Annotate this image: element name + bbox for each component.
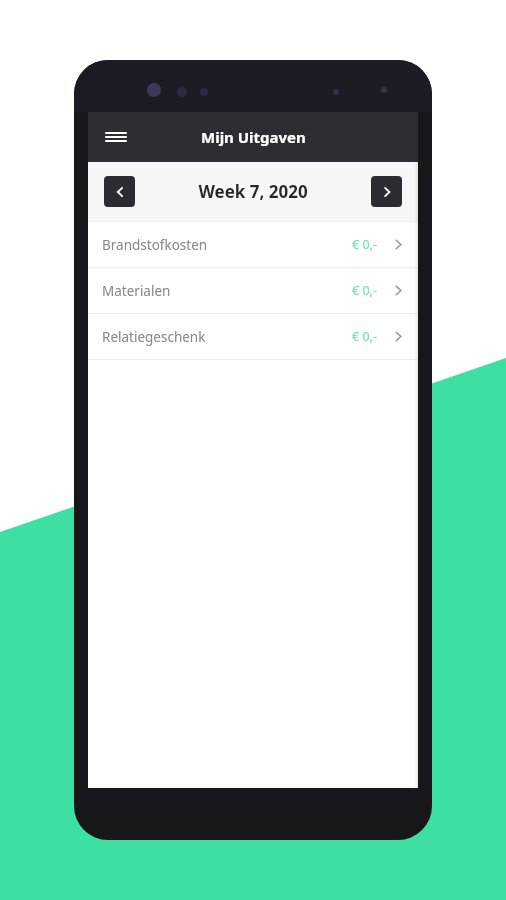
button[interactable]: Materialen xyxy=(88,268,418,313)
button[interactable]: Menu xyxy=(98,119,134,155)
staticText: Brandstofkosten xyxy=(102,236,208,254)
staticText: Relatiegeschenk xyxy=(102,328,206,346)
staticText: € 0,- xyxy=(352,328,377,345)
staticText: Materialen xyxy=(102,282,171,300)
button[interactable]: Next week xyxy=(371,176,402,207)
button[interactable]: Relatiegeschenk xyxy=(88,314,418,359)
staticText: € 0,- xyxy=(352,236,377,253)
button[interactable]: Brandstofkosten xyxy=(88,222,418,267)
staticText: Week 7, 2020 xyxy=(198,180,308,203)
button[interactable]: Previous week xyxy=(104,176,135,207)
staticText: € 0,- xyxy=(352,282,377,299)
staticText: Mijn Uitgaven xyxy=(201,127,306,147)
